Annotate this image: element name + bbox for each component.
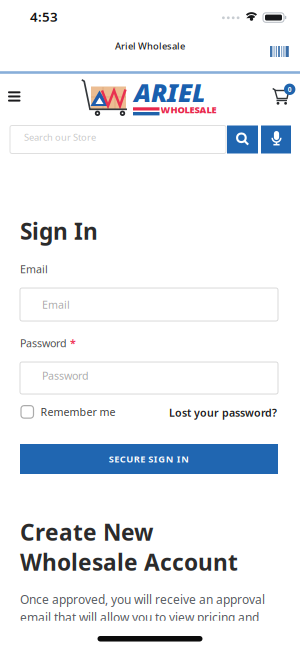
staticText: Sign In — [20, 216, 98, 246]
staticText: Email — [42, 297, 70, 312]
staticText: Password — [42, 368, 89, 383]
staticText: WHOLESALE — [160, 103, 216, 116]
staticText: Email — [20, 262, 48, 276]
staticText: Search our Store — [24, 131, 96, 143]
button[interactable]: Search — [227, 125, 258, 153]
button[interactable]: Lost your password? — [169, 405, 277, 420]
staticText: Ariel Wholesale — [115, 40, 185, 52]
staticText: Remember me — [40, 405, 115, 419]
staticText: ARIEL — [134, 76, 205, 109]
staticText: Password — [20, 336, 67, 350]
staticText: email that will allow you to view pricin… — [20, 609, 259, 625]
staticText: 0 — [288, 85, 292, 94]
staticText: Create New — [20, 517, 153, 547]
staticText: Once approved, you will receive an appro… — [20, 591, 265, 607]
staticText: Wholesale Account — [20, 547, 238, 577]
staticText: * — [70, 336, 76, 350]
button[interactable]: Scan barcode — [270, 46, 289, 57]
button[interactable]: SECURE SIGN IN — [20, 444, 278, 474]
button[interactable]: Remember me — [21, 405, 115, 419]
staticText: 4:53 — [30, 8, 58, 25]
staticText: Lost your password? — [169, 405, 277, 420]
staticText: SECURE SIGN IN — [109, 453, 189, 465]
button[interactable]: Voice search — [261, 125, 291, 153]
button[interactable]: Menu — [8, 91, 20, 102]
button[interactable]: Cart — [271, 83, 296, 105]
